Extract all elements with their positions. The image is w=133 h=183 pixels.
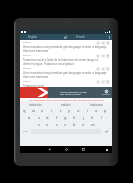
button[interactable]: Home <box>64 147 69 152</box>
button[interactable]: o <box>92 107 101 114</box>
staticText: French <box>23 54 31 57</box>
button[interactable]: l <box>97 114 106 121</box>
staticText: traduire <box>61 103 71 107</box>
staticText: l <box>101 115 103 120</box>
staticText: Voice translator using translate gets la… <box>23 45 107 49</box>
staticText: English <box>28 35 38 39</box>
button[interactable]: e <box>38 107 47 114</box>
staticText: w <box>32 108 36 113</box>
button[interactable]: t <box>56 107 65 114</box>
button[interactable]: z <box>34 121 43 128</box>
staticText: d <box>46 115 49 120</box>
staticText: t <box>60 108 62 113</box>
staticText: Votre traducteur OS est less actions fut… <box>60 90 87 96</box>
staticText: e <box>41 108 44 113</box>
staticText: Voici traducteur vocal traduction gratui… <box>29 99 104 102</box>
staticText: INSTALLER <box>102 93 110 95</box>
staticText: ?123 <box>23 130 28 133</box>
staticText: k <box>91 115 94 120</box>
button[interactable]: English <box>21 34 45 40</box>
button[interactable]: English <box>20 40 112 53</box>
button[interactable]: i <box>83 107 92 114</box>
button[interactable]: Votre traducteur OS est less actions fut… <box>20 87 112 98</box>
button[interactable]: French <box>20 53 112 66</box>
button[interactable]: w <box>29 107 38 114</box>
staticText: b <box>73 122 76 127</box>
button[interactable]: Copy <box>106 80 110 84</box>
button[interactable]: k <box>88 114 97 121</box>
staticText: x <box>46 122 49 127</box>
button[interactable]: s <box>34 114 43 121</box>
button[interactable]: Back <box>47 147 52 152</box>
button[interactable]: r <box>47 107 56 114</box>
staticText: traducteur <box>90 103 103 107</box>
staticText: n <box>82 122 85 127</box>
button[interactable]: m <box>88 121 97 128</box>
staticText: g <box>64 115 67 120</box>
staticText: f <box>56 115 58 120</box>
staticText: French <box>76 35 85 39</box>
button[interactable]: Copy <box>106 67 110 71</box>
staticText: r <box>51 108 53 113</box>
button[interactable]: Symbols <box>21 129 30 134</box>
staticText: u <box>77 108 80 113</box>
staticText: Voice translator using translate gets la… <box>23 71 107 75</box>
button[interactable]: English <box>20 66 112 79</box>
staticText: q <box>23 108 26 113</box>
staticText: Traducteur vocal a l'aide de la traducti… <box>23 58 98 62</box>
button[interactable]: Share <box>101 54 105 58</box>
button[interactable]: v <box>61 121 70 128</box>
button[interactable]: d <box>43 114 52 121</box>
button[interactable]: Favorite <box>96 41 100 45</box>
button[interactable]: j <box>79 114 88 121</box>
button[interactable]: French <box>69 34 91 40</box>
staticText: p <box>104 108 107 113</box>
button[interactable]: traduire <box>50 102 81 107</box>
staticText: English <box>23 67 31 70</box>
button[interactable]: p <box>101 107 110 114</box>
staticText: that voice translator <box>23 49 49 53</box>
button[interactable]: b <box>70 121 79 128</box>
button[interactable]: Share <box>101 67 105 71</box>
button[interactable]: French <box>20 79 112 87</box>
button[interactable]: c <box>52 121 61 128</box>
button[interactable]: q <box>20 107 29 114</box>
button[interactable]: Copy <box>106 41 110 45</box>
button[interactable]: u <box>74 107 83 114</box>
button[interactable]: n <box>79 121 88 128</box>
staticText: French <box>23 80 31 83</box>
staticText: a <box>28 115 31 120</box>
button[interactable]: Enter <box>102 129 111 134</box>
button[interactable]: Favorite <box>96 80 100 84</box>
staticText: m <box>91 122 95 127</box>
button[interactable]: h <box>70 114 79 121</box>
staticText: that voice translator <box>23 75 49 79</box>
staticText: z <box>38 122 40 127</box>
staticText: i <box>87 108 89 113</box>
button[interactable]: f <box>52 114 61 121</box>
staticText: d'entrer langue. Traducteur vocal gratui… <box>23 62 74 66</box>
staticText: s <box>38 115 40 120</box>
button[interactable]: Swap languages <box>62 34 69 40</box>
button[interactable]: Copy <box>106 54 110 58</box>
staticText: o <box>95 108 98 113</box>
staticText: y <box>68 108 71 113</box>
button[interactable]: traduction <box>20 102 50 107</box>
button[interactable]: a <box>25 114 34 121</box>
button[interactable]: x <box>43 121 52 128</box>
button[interactable]: traducteur <box>81 102 112 107</box>
staticText: traduction <box>29 103 42 107</box>
staticText: Traducteur vocal <box>23 84 44 87</box>
button[interactable]: y <box>65 107 74 114</box>
button[interactable]: Favorite <box>96 54 100 58</box>
button[interactable]: Favorite <box>96 67 100 71</box>
staticText: h <box>73 115 76 120</box>
button[interactable]: Recents <box>81 147 86 152</box>
staticText: j <box>83 115 85 120</box>
staticText: English <box>23 41 31 44</box>
button[interactable]: More options <box>106 34 112 40</box>
button[interactable]: g <box>61 114 70 121</box>
button[interactable]: Share <box>101 80 105 84</box>
button[interactable]: Share <box>101 41 105 45</box>
